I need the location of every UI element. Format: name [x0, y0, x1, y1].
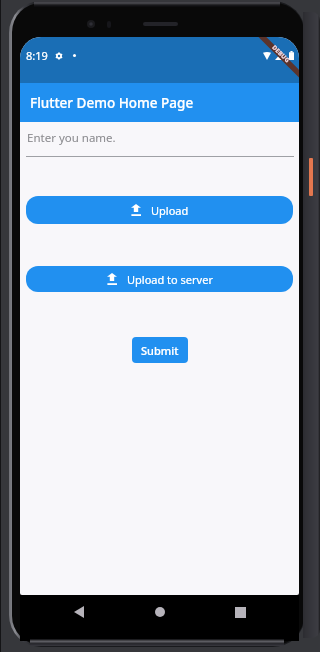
button[interactable]: Enter you name. [20, 122, 299, 157]
button[interactable]: Upload [26, 196, 293, 224]
staticText: Upload to server [127, 272, 213, 287]
staticText: 8:19 [26, 48, 48, 63]
staticText: Enter you name. [27, 130, 116, 146]
button[interactable]: Upload to server [26, 266, 293, 292]
button[interactable]: Back [66, 599, 92, 625]
staticText: Submit [141, 343, 179, 358]
staticText: DEBUG [270, 43, 292, 65]
button[interactable]: Recent apps [227, 599, 253, 625]
button[interactable]: Submit [132, 337, 188, 363]
staticText: Upload [151, 203, 189, 218]
staticText: Flutter Demo Home Page [30, 94, 194, 112]
button[interactable]: Home [147, 599, 173, 625]
